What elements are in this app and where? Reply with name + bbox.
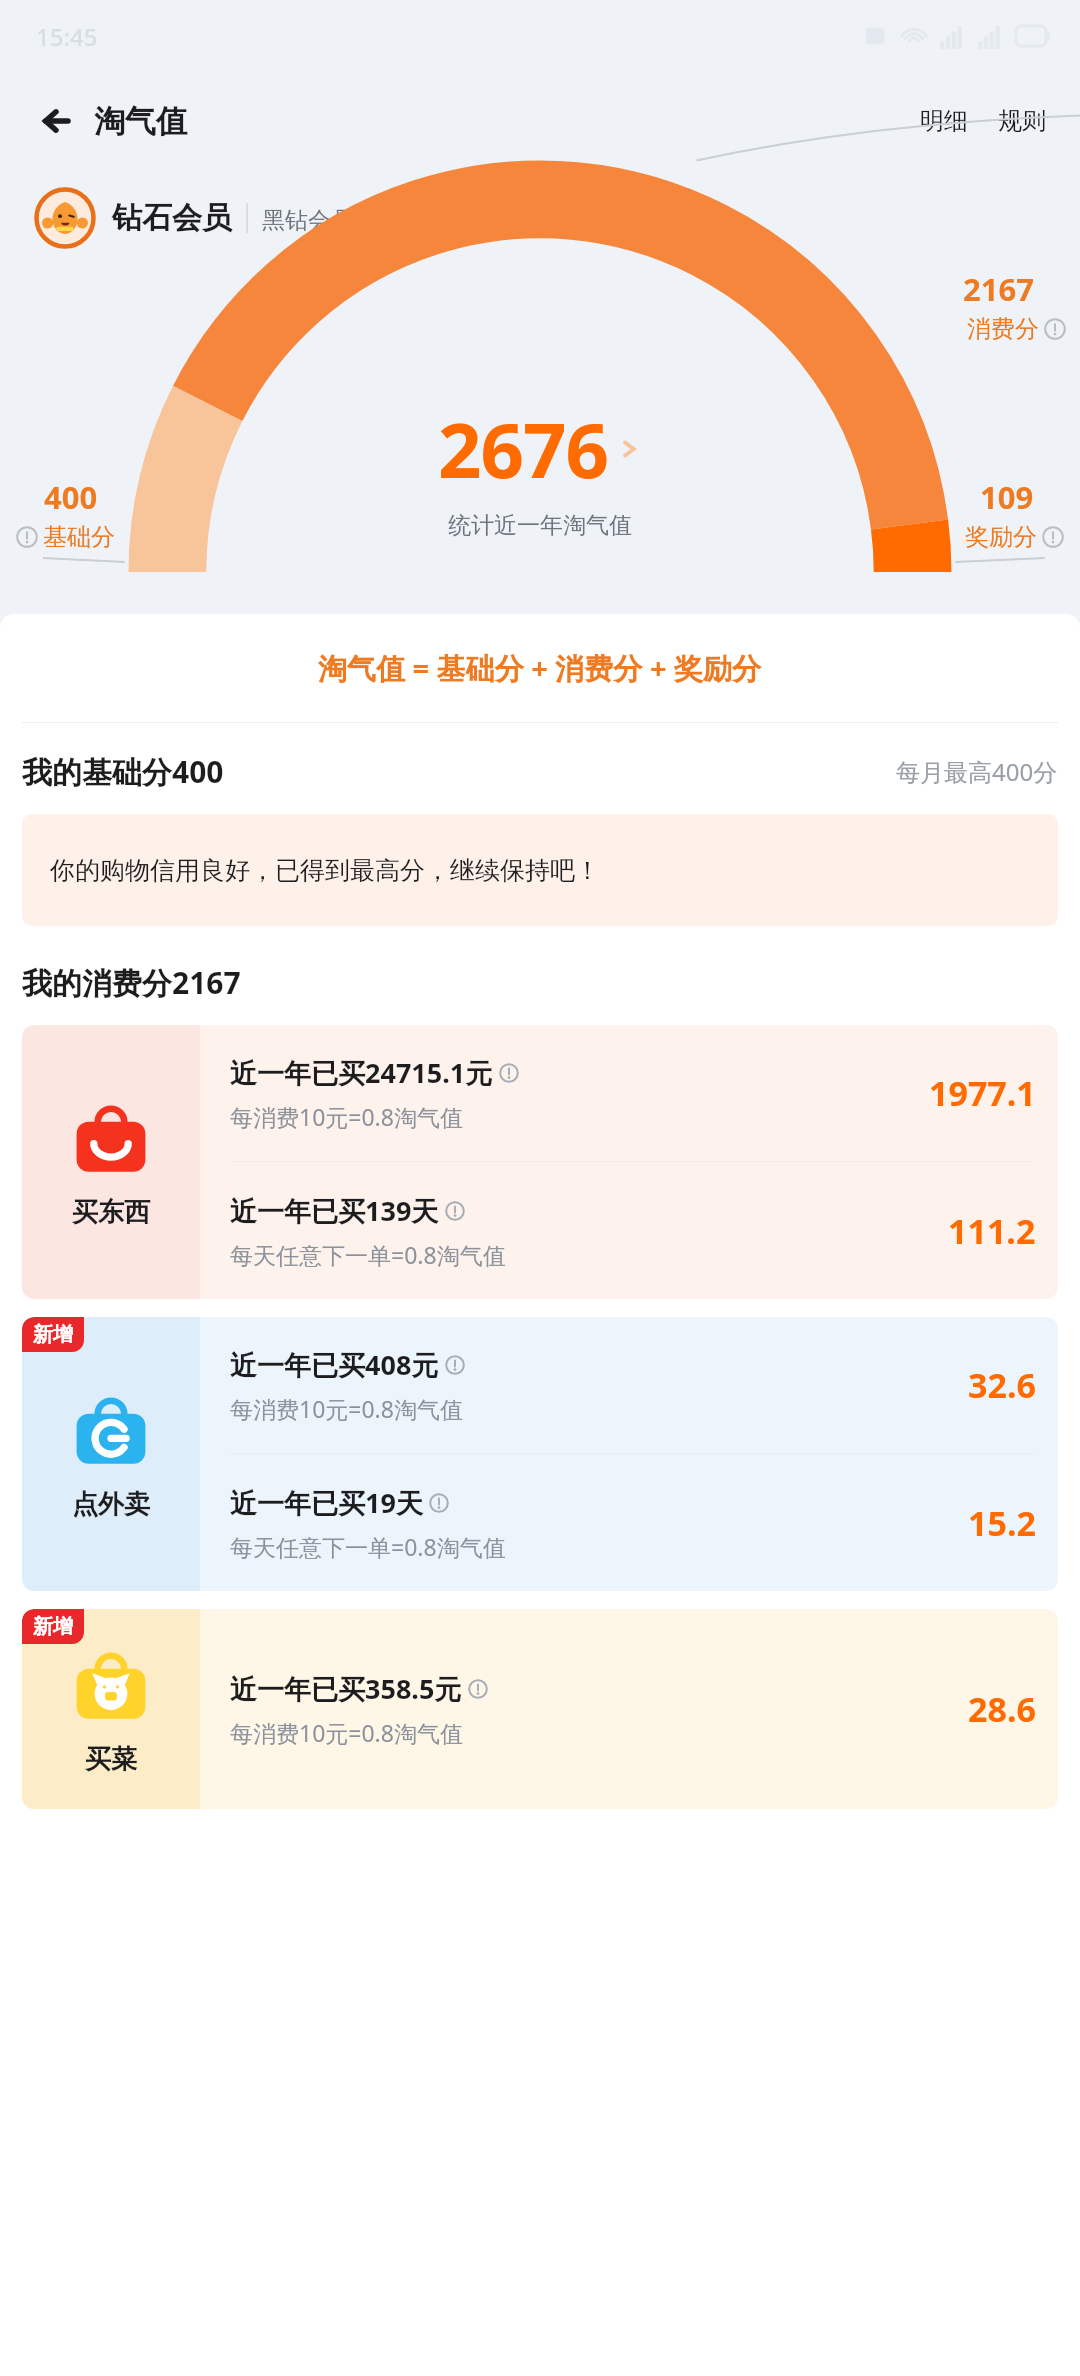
staticText: 统计近一年淘气值 [448, 511, 632, 540]
staticText: 黑钻会员10000-100000淘气值 [262, 203, 576, 234]
staticText: 规则 [998, 106, 1046, 136]
staticText: 近一年已买358.5元 [230, 1670, 462, 1707]
staticText: 钻石会员 [112, 199, 232, 237]
staticText: 消费分 [967, 314, 1039, 344]
staticText: 基础分 [43, 522, 115, 552]
staticText: 新增 [33, 1322, 73, 1347]
button[interactable]: 钻石会员 [0, 170, 1080, 266]
staticText: 每消费10元=0.8淘气值 [230, 1101, 463, 1132]
staticText: 近一年已买19天 [230, 1484, 423, 1521]
staticText: 每消费10元=0.8淘气值 [230, 1717, 463, 1748]
staticText: 我的消费分2167 [22, 962, 241, 1003]
button[interactable]: 规则 [986, 98, 1058, 144]
staticText: 淘气值 [94, 102, 187, 141]
staticText: 点外卖 [72, 1488, 150, 1521]
other: Back [32, 99, 76, 143]
staticText: 买东西 [72, 1196, 150, 1229]
staticText: 买菜 [85, 1743, 137, 1776]
staticText: 新增 [33, 1614, 73, 1639]
staticText: 明细 [920, 106, 968, 136]
staticText: 近一年已买139天 [230, 1192, 439, 1229]
staticText: 近一年已买408元 [230, 1346, 439, 1383]
staticText: 2676 [438, 397, 608, 501]
button[interactable]: 你的购物信用良好，已得到最高分，继续保持吧！ [22, 814, 1058, 926]
staticText: 每天任意下一单=0.8淘气值 [230, 1239, 506, 1270]
button[interactable]: 买东西 [22, 1025, 1058, 1299]
staticText: 每消费10元=0.8淘气值 [230, 1393, 463, 1424]
button[interactable]: 点外卖 [22, 1317, 1058, 1591]
button[interactable]: 明细 [908, 98, 980, 144]
staticText: 15.2 [968, 1500, 1036, 1546]
staticText: 每月最高400分 [896, 755, 1058, 788]
button[interactable]: Back [22, 93, 197, 149]
staticText: 淘气值 = 基础分 + 消费分 + 奖励分 [318, 648, 762, 688]
staticText: 28.6 [968, 1686, 1036, 1732]
staticText: 109 [980, 476, 1034, 518]
staticText: 近一年已买24715.1元 [230, 1054, 493, 1091]
staticText: 400 [44, 476, 98, 518]
staticText: 1977.1 [929, 1070, 1036, 1116]
staticText: 每天任意下一单=0.8淘气值 [230, 1531, 506, 1562]
button[interactable]: 买菜 [22, 1609, 1058, 1809]
staticText: 你的购物信用良好，已得到最高分，继续保持吧！ [50, 855, 600, 886]
staticText: 32.6 [968, 1362, 1036, 1408]
staticText: 奖励分 [965, 522, 1037, 552]
staticText: 我的基础分400 [22, 751, 224, 792]
staticText: 2167 [963, 268, 1034, 310]
staticText: 15:45 [36, 20, 98, 53]
staticText: 111.2 [948, 1208, 1036, 1254]
